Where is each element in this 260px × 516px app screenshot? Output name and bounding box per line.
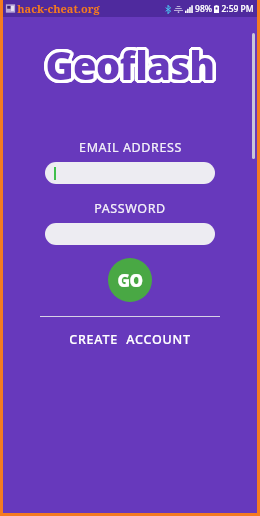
staticText: Geoflash	[45, 39, 215, 91]
staticText: 98%	[195, 3, 212, 15]
staticText: Geoflash	[48, 40, 218, 92]
staticText: Geoflash	[46, 42, 216, 94]
staticText: Geoflash	[44, 36, 214, 88]
staticText: Geoflash	[43, 37, 213, 89]
staticText: Geoflash	[45, 41, 215, 93]
staticText: 2:59 PM	[221, 3, 254, 15]
staticText: Geoflash	[47, 37, 217, 89]
staticText: Geoflash	[42, 38, 212, 90]
staticText: CREATE ACCOUNT	[69, 331, 191, 348]
staticText: Geoflash	[45, 42, 215, 94]
staticText: hack-cheat.org	[17, 1, 100, 16]
button[interactable]: CREATE ACCOUNT	[55, 327, 205, 352]
staticText: Geoflash	[42, 39, 212, 91]
button[interactable]: Go	[108, 258, 152, 302]
button[interactable]: Email address	[45, 162, 215, 184]
staticText: Geoflash	[48, 38, 218, 90]
staticText: Geoflash	[45, 36, 215, 88]
staticText: Geoflash	[45, 37, 215, 89]
staticText: Geoflash	[47, 41, 217, 93]
staticText: Geoflash	[46, 36, 216, 88]
staticText: Geoflash	[43, 39, 213, 91]
staticText: GO	[117, 269, 143, 292]
staticText: EMAIL ADDRESS	[79, 139, 182, 156]
staticText: Geoflash	[47, 39, 217, 91]
staticText: PASSWORD	[94, 200, 166, 217]
staticText: Geoflash	[48, 39, 218, 91]
staticText: Geoflash	[42, 40, 212, 92]
button[interactable]: Password	[45, 223, 215, 245]
staticText: Geoflash	[43, 41, 213, 93]
staticText: Geoflash	[44, 42, 214, 94]
